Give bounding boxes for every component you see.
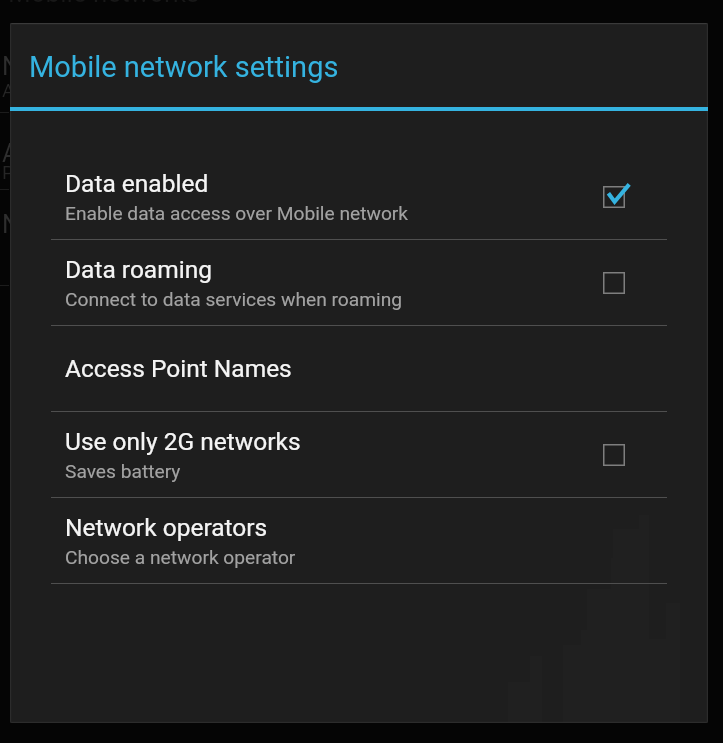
staticText: Use only 2G networks	[65, 427, 301, 456]
button[interactable]: Network operators	[10, 498, 708, 583]
button[interactable]: Data enabled	[10, 154, 708, 239]
staticText: Data roaming	[65, 255, 212, 284]
staticText: Data enabled	[65, 169, 209, 198]
button[interactable]: Use only 2G networks	[10, 412, 708, 497]
staticText: Pick an access point	[2, 161, 176, 183]
staticText: Mobile networks	[8, 0, 200, 8]
button[interactable]: Disabled, Use only 2G networks	[597, 438, 631, 472]
staticText: Connect to data services when roaming	[65, 288, 403, 311]
button[interactable]: Disabled, Data roaming	[597, 266, 631, 300]
staticText: Network operators	[65, 513, 268, 542]
staticText: Network operators	[2, 52, 209, 81]
staticText: Saves battery	[65, 460, 181, 483]
button[interactable]: Access Point Names	[10, 326, 708, 411]
button[interactable]: Data roaming	[10, 240, 708, 325]
staticText: Access Point Names	[2, 139, 234, 168]
staticText: Auto-select network	[2, 79, 171, 101]
staticText: Network mode	[2, 210, 166, 239]
button[interactable]: Enabled, Data enabled	[597, 180, 631, 214]
staticText: Enable data access over Mobile network	[65, 202, 409, 225]
staticText: Access Point Names	[65, 354, 292, 383]
staticText: Choose a network operator	[65, 546, 296, 569]
staticText: Mobile network settings	[29, 50, 339, 84]
